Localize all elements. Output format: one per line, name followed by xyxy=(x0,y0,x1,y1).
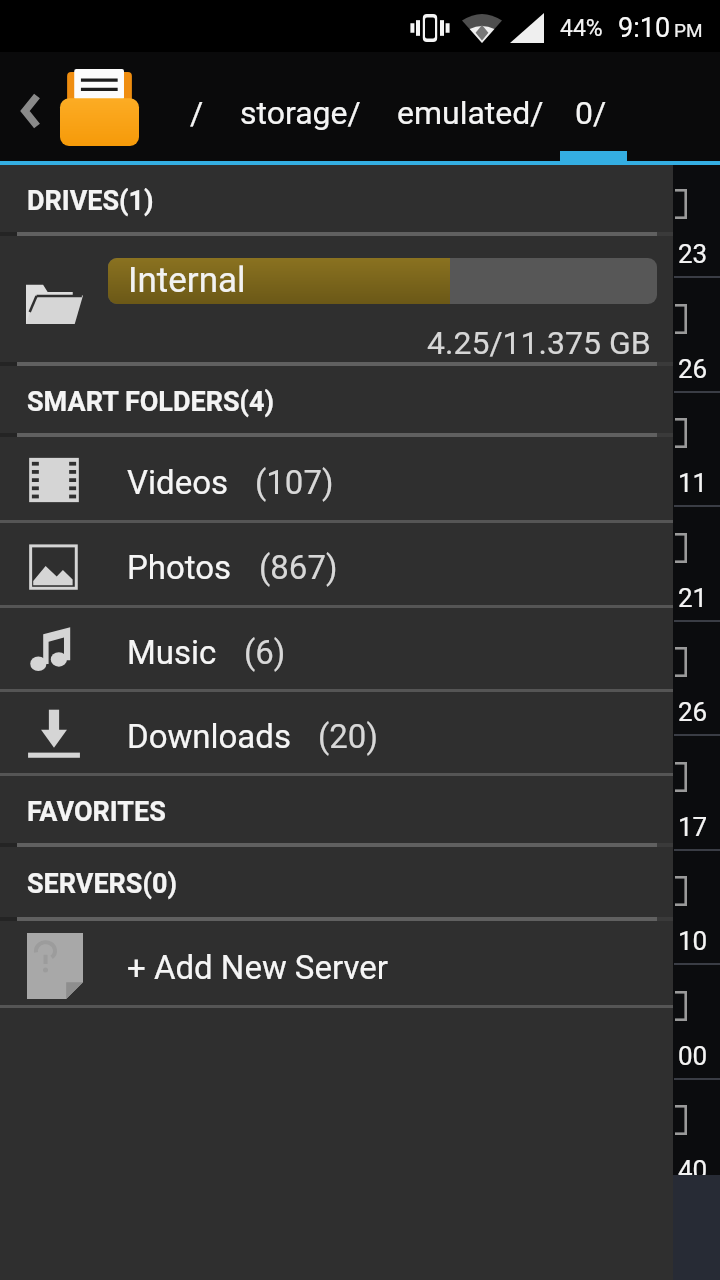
button[interactable]: emulated/ xyxy=(385,82,556,144)
staticText: 4.25/11.375 GB xyxy=(427,324,651,362)
button[interactable]: / xyxy=(180,82,214,144)
staticText: Internal xyxy=(128,260,246,301)
button[interactable]: storage/ xyxy=(228,82,373,144)
staticText: DRIVES(1) xyxy=(27,185,154,217)
button[interactable]: Videos xyxy=(0,437,673,523)
button[interactable]: Back xyxy=(2,52,58,161)
staticText: storage/ xyxy=(240,94,361,132)
staticText: 10 xyxy=(678,926,708,956)
staticText: (107) xyxy=(255,463,334,502)
staticText: Videos xyxy=(127,463,228,502)
staticText: PM xyxy=(674,19,703,41)
staticText: + Add New Server xyxy=(127,948,388,987)
staticText: Photos xyxy=(127,548,232,587)
staticText: SMART FOLDERS(4) xyxy=(27,386,275,418)
staticText: / xyxy=(190,94,204,132)
staticText: 44% xyxy=(560,15,603,42)
button[interactable]: Root folder xyxy=(56,52,148,161)
staticText: 00 xyxy=(678,1041,708,1071)
staticText: 26 xyxy=(678,354,708,384)
staticText: 26 xyxy=(678,697,708,727)
staticText: 0/ xyxy=(575,94,607,132)
staticText: 17 xyxy=(678,812,708,842)
staticText: (20) xyxy=(318,717,378,756)
staticText: 11 xyxy=(678,468,708,498)
button[interactable]: + Add New Server xyxy=(0,921,673,1008)
button[interactable]: Internal xyxy=(0,236,673,366)
staticText: 23 xyxy=(678,239,708,269)
staticText: 40 xyxy=(678,1155,708,1185)
staticText: FAVORITES xyxy=(27,796,166,828)
staticText: emulated/ xyxy=(397,94,544,132)
staticText: 9:10 xyxy=(618,12,671,44)
button[interactable]: Music xyxy=(0,608,673,692)
button[interactable]: 0/ xyxy=(563,82,619,144)
staticText: 21 xyxy=(678,583,708,613)
staticText: Downloads xyxy=(127,717,291,756)
button[interactable]: Downloads xyxy=(0,692,673,776)
staticText: Music xyxy=(127,633,217,672)
button[interactable]: Photos xyxy=(0,523,673,608)
staticText: (867) xyxy=(259,548,338,587)
staticText: SERVERS(0) xyxy=(27,868,177,900)
staticText: (6) xyxy=(244,633,286,672)
